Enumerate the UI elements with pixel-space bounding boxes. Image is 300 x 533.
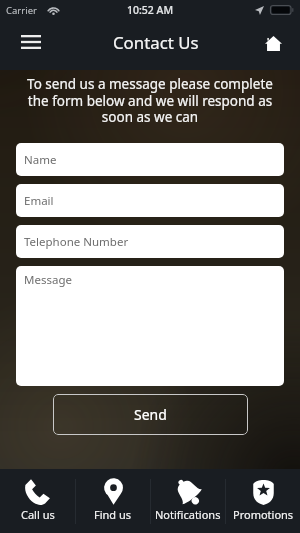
button[interactable]: Telephone Number — [16, 225, 284, 258]
button[interactable]: Menu — [12, 26, 49, 57]
button[interactable]: Name — [16, 143, 284, 176]
staticText: Name — [24, 152, 57, 168]
button[interactable]: Call us — [0, 469, 75, 533]
staticText: Find us — [94, 507, 132, 522]
button[interactable]: Find us — [76, 469, 150, 533]
staticText: Notifications — [155, 507, 221, 522]
staticText: Telephone Number — [24, 234, 129, 250]
staticText: Call us — [21, 507, 55, 522]
staticText: Contact Us — [113, 31, 199, 54]
staticText: Send — [134, 405, 167, 424]
staticText: 10:52 AM — [127, 3, 174, 17]
button[interactable]: Message — [16, 266, 284, 386]
staticText: Email — [24, 193, 54, 209]
button[interactable]: Email — [16, 184, 284, 217]
staticText: Promotions — [233, 507, 294, 522]
staticText: Message — [24, 272, 72, 288]
button[interactable]: Promotions — [226, 469, 300, 533]
staticText: Carrier — [6, 4, 37, 17]
button[interactable]: Home — [255, 26, 291, 60]
staticText: To send us a message please complete the… — [18, 75, 282, 126]
button[interactable]: Notifications — [151, 469, 225, 533]
button[interactable]: Send — [53, 394, 248, 435]
